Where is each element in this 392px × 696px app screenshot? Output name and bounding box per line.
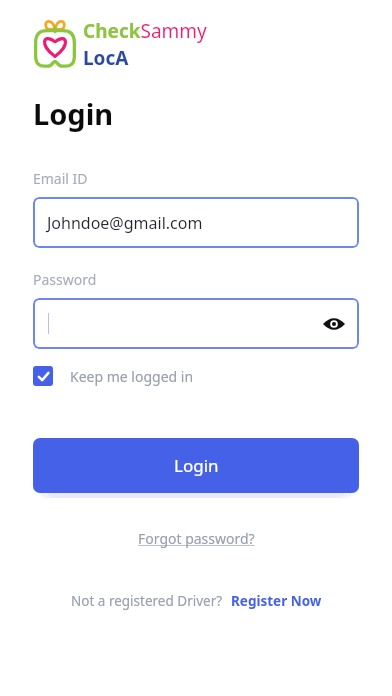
staticText: Johndoe@gmail.com (47, 212, 203, 234)
button[interactable]: Johndoe@gmail.com (33, 197, 359, 248)
button[interactable]: Show password (47, 313, 345, 335)
staticText: Login (33, 94, 114, 133)
staticText: Email ID (33, 169, 88, 188)
staticText: LocA (83, 45, 129, 71)
staticText: Not a registered Driver? (71, 592, 223, 610)
staticText: Keep me logged in (70, 367, 194, 386)
button[interactable]: Show password (33, 298, 359, 349)
staticText: Password (33, 270, 97, 289)
button[interactable]: Forgot password? (132, 527, 261, 550)
staticText: Login (174, 454, 219, 477)
staticText: Forgot password? (138, 529, 255, 548)
button[interactable]: Login (33, 438, 359, 493)
staticText: Register Now (231, 592, 322, 610)
button[interactable]: Keep me logged in (33, 366, 194, 386)
staticText: CheckSammy (83, 18, 207, 44)
button[interactable]: Register Now (231, 592, 322, 610)
